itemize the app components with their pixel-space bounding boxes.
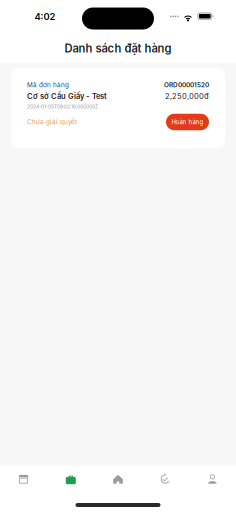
staticText: Hoàn hàng: [171, 118, 203, 125]
staticText: 2,250,000đ: [165, 92, 209, 101]
button[interactable]: Đồng bộ: [142, 469, 189, 489]
staticText: ORD00001520: [164, 81, 209, 89]
button[interactable]: Tài khoản: [189, 469, 236, 489]
staticText: 2024-01-05T09:02:16.000000Z: [27, 104, 98, 110]
button[interactable]: Mã đơn hàng: [11, 68, 225, 148]
button[interactable]: Cửa hàng: [0, 469, 47, 489]
staticText: Chưa giải quyết: [27, 118, 77, 126]
staticText: Mã đơn hàng: [27, 81, 69, 89]
staticText: Cơ sở Cầu Giấy - Test: [27, 92, 107, 101]
staticText: 4:02: [34, 11, 55, 22]
staticText: Danh sách đặt hàng: [64, 42, 171, 55]
button[interactable]: Đơn hàng: [47, 469, 94, 489]
button[interactable]: Trang chủ: [94, 469, 142, 489]
